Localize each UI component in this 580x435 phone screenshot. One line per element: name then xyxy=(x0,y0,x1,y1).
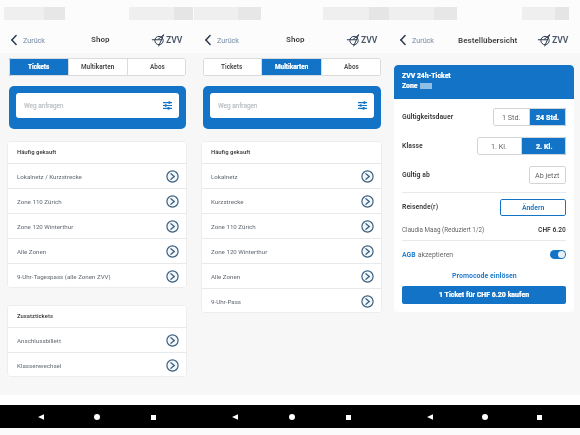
staticText: 1. Kl. xyxy=(491,142,507,150)
staticText: Weg anfragen xyxy=(24,102,64,110)
other: Open xyxy=(166,195,179,208)
button[interactable]: Kurzstrecke xyxy=(201,189,382,213)
button[interactable]: Home xyxy=(87,407,107,427)
button[interactable]: Back xyxy=(225,407,245,427)
button[interactable]: Ändern xyxy=(500,199,566,216)
button[interactable]: Multikarten xyxy=(69,58,127,76)
staticText: Ändern xyxy=(522,204,545,212)
other: Open xyxy=(166,334,179,347)
other: Open xyxy=(361,270,374,283)
button[interactable]: Zone 120 Winterthur xyxy=(7,214,187,238)
button[interactable]: Zurück xyxy=(194,30,244,50)
staticText: Tickets xyxy=(221,63,243,71)
button[interactable]: Klassenwechsel xyxy=(7,353,187,377)
staticText: Weg anfragen xyxy=(218,102,258,110)
staticText: Reisende(r) xyxy=(402,203,439,211)
staticText: Zusatztickets xyxy=(17,313,53,320)
staticText: ZVV xyxy=(166,35,183,45)
staticText: Anschlussbillett xyxy=(17,337,61,344)
button[interactable]: Recent apps xyxy=(529,407,549,427)
button[interactable]: Zone 120 Winterthur xyxy=(201,239,382,263)
button[interactable]: Abos xyxy=(128,58,186,76)
other: Filter xyxy=(358,101,367,110)
button[interactable]: Alle Zonen xyxy=(201,264,382,288)
button[interactable]: Weg anfragen xyxy=(210,93,374,118)
button[interactable]: AGB akzeptieren xyxy=(550,250,566,259)
staticText: akzeptieren xyxy=(416,251,454,259)
staticText: ZVV xyxy=(361,35,378,45)
staticText: Promocode einlösen xyxy=(452,272,517,280)
staticText: Abos xyxy=(150,63,165,71)
staticText: Zone 120 Winterthur xyxy=(211,248,268,255)
button[interactable]: Promocode einlösen xyxy=(394,268,574,284)
button[interactable]: Zurück xyxy=(0,30,50,50)
staticText: Klassenwechsel xyxy=(17,362,62,369)
staticText: Lokalnetz / Kurzstrecke xyxy=(17,173,82,180)
staticText: 2. Kl. xyxy=(536,142,553,150)
button[interactable]: Zone 110 Zürich xyxy=(7,189,187,213)
button[interactable]: Lokalnetz / Kurzstrecke xyxy=(7,164,187,188)
staticText: Multikarten xyxy=(81,63,115,71)
staticText: Zurück xyxy=(217,36,240,44)
button[interactable]: Abos xyxy=(322,58,381,76)
staticText: Claudia Maag (Reduziert 1/2) xyxy=(402,226,485,233)
other: Open xyxy=(361,195,374,208)
button[interactable]: Ab jetzt xyxy=(529,166,566,184)
staticText: 9-Uhr-Pass xyxy=(211,298,242,305)
button[interactable]: Zurück xyxy=(389,30,439,50)
staticText: Alle Zonen xyxy=(17,248,47,255)
staticText: ZVV xyxy=(552,35,569,45)
other: Filter xyxy=(163,101,172,110)
staticText: Zone 110 Zürich xyxy=(211,223,256,230)
staticText: CHF 6.20 xyxy=(538,226,566,234)
button[interactable]: Tickets xyxy=(9,58,68,76)
staticText: AGB xyxy=(402,251,416,259)
button[interactable]: Zone 110 Zürich xyxy=(201,214,382,238)
staticText: Klasse xyxy=(402,142,423,150)
button[interactable]: Back xyxy=(31,407,51,427)
button[interactable]: Recent apps xyxy=(143,407,163,427)
staticText: Gültigkeitsdauer xyxy=(402,113,454,121)
button[interactable]: Home xyxy=(475,407,495,427)
staticText: Zurück xyxy=(23,36,46,44)
button[interactable]: 1 Ticket für CHF 6.20 kaufen xyxy=(402,286,566,304)
button[interactable]: 9-Uhr-Pass xyxy=(201,289,382,313)
staticText: 1 Ticket für CHF 6.20 kaufen xyxy=(439,291,530,299)
button[interactable]: Weg anfragen xyxy=(16,93,179,118)
staticText: ZVV 24h-Ticket xyxy=(402,72,451,80)
staticText: 9-Uhr-Tagespass (alle Zonen ZVV) xyxy=(17,273,111,280)
staticText: Tickets xyxy=(28,63,50,71)
button[interactable]: Alle Zonen xyxy=(7,239,187,263)
button[interactable]: 1 Std. xyxy=(493,108,529,126)
staticText: Häufig gekauft xyxy=(17,149,57,156)
staticText: Bestellübersicht xyxy=(458,35,518,44)
button[interactable]: 2. Kl. xyxy=(522,137,566,155)
other: Open xyxy=(166,359,179,372)
staticText: Multikarten xyxy=(275,63,309,71)
staticText: Lokalnetz xyxy=(211,173,238,180)
staticText: Kurzstrecke xyxy=(211,198,244,205)
staticText: Ab jetzt xyxy=(535,171,560,179)
staticText: 1 Std. xyxy=(502,113,521,121)
button[interactable]: AGB xyxy=(402,251,454,259)
staticText: 24 Std. xyxy=(536,113,560,121)
button[interactable]: 9-Uhr-Tagespass (alle Zonen ZVV) xyxy=(7,264,187,288)
staticText: Alle Zonen xyxy=(211,273,241,280)
button[interactable]: Recent apps xyxy=(338,407,358,427)
staticText: Häufig gekauft xyxy=(211,149,251,156)
button[interactable]: 24 Std. xyxy=(530,108,566,126)
staticText: Gültig ab xyxy=(402,171,430,179)
button[interactable]: Tickets xyxy=(203,58,261,76)
staticText: Zone xyxy=(402,82,418,90)
button[interactable]: Multikarten xyxy=(262,58,321,76)
other: Open xyxy=(361,170,374,183)
other: Open xyxy=(361,295,374,308)
button[interactable]: 1. Kl. xyxy=(477,137,521,155)
button[interactable]: Lokalnetz xyxy=(201,164,382,188)
other: Open xyxy=(361,245,374,258)
other: Open xyxy=(166,220,179,233)
button[interactable]: Anschlussbillett xyxy=(7,328,187,352)
button[interactable]: Back xyxy=(420,407,440,427)
button[interactable]: Home xyxy=(282,407,302,427)
staticText: Abos xyxy=(344,63,359,71)
